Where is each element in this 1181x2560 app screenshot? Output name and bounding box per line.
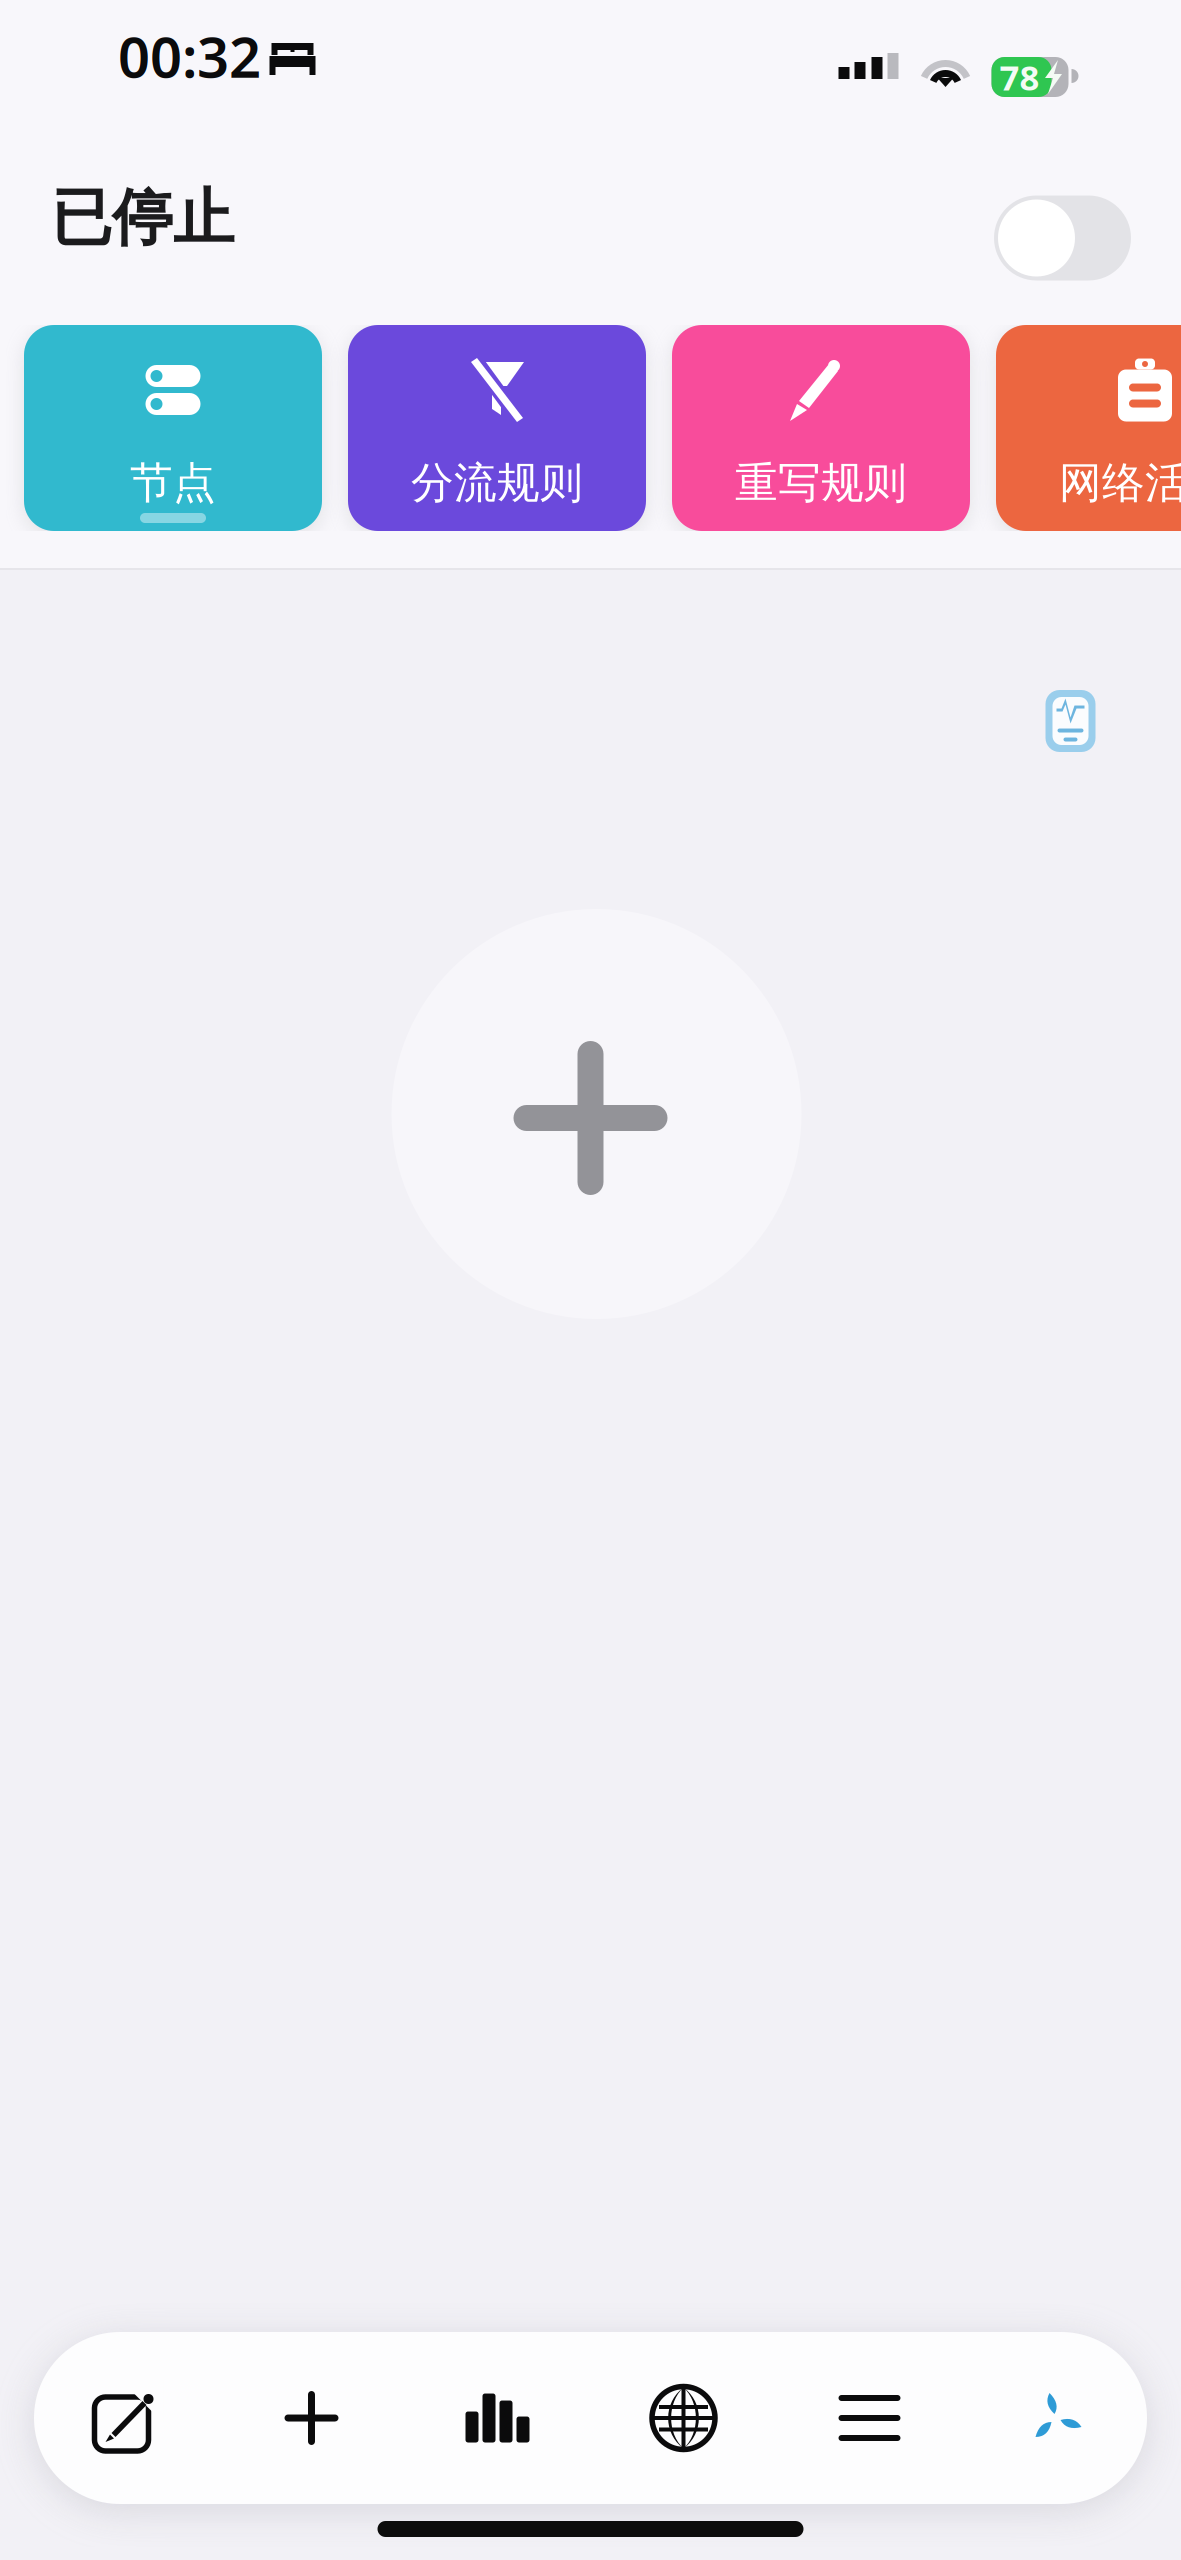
staticText: 78	[999, 53, 1039, 101]
button[interactable]: Add configuration	[391, 909, 801, 1319]
button[interactable]: Start proxy	[994, 195, 1131, 280]
button[interactable]: 重写规则	[672, 325, 970, 531]
button[interactable]: 网络活动	[996, 325, 1181, 531]
button[interactable]: Add	[218, 2332, 404, 2504]
button[interactable]: 节点	[24, 325, 322, 531]
button[interactable]: More	[776, 2332, 962, 2504]
staticText: 分流规则	[411, 456, 583, 510]
staticText: 节点	[130, 456, 216, 510]
button[interactable]: 分流规则	[348, 325, 646, 531]
button[interactable]: Global routing	[590, 2332, 776, 2504]
button[interactable]: Traffic	[404, 2332, 590, 2504]
button[interactable]: Edit configuration	[32, 2332, 218, 2504]
button[interactable]: Settings	[962, 2332, 1148, 2504]
staticText: 00:32	[118, 18, 261, 94]
staticText: 网络活动	[1059, 456, 1181, 510]
button[interactable]: Logs	[1045, 690, 1095, 752]
staticText: 已停止	[51, 179, 234, 257]
staticText: 重写规则	[735, 456, 907, 510]
